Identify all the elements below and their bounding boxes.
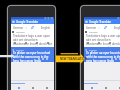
staticText: English <box>114 26 120 30</box>
button[interactable]: Listen <box>11 41 22 44</box>
other: Listen <box>85 49 87 51</box>
other: Swap languages <box>31 26 34 29</box>
button[interactable]: Listen <box>84 41 95 44</box>
staticText: Te plistar ua nyur ha untuel with the ca… <box>86 51 120 63</box>
button[interactable]: Fullscreen <box>44 41 54 44</box>
staticText: Google Translate <box>16 20 39 24</box>
button[interactable]: Home <box>84 86 99 89</box>
button[interactable]: Fullscreen <box>117 41 120 44</box>
staticText: NEW TRANSLATION <box>60 57 87 61</box>
button[interactable]: Saved <box>99 86 113 89</box>
staticText: Te plistar ua nyur ha untuel with the ca… <box>13 51 53 63</box>
button[interactable]: Open navigation menu <box>11 19 54 24</box>
button[interactable]: German <box>13 26 27 30</box>
button[interactable]: Share <box>33 41 44 44</box>
other: Listen <box>12 49 14 51</box>
button[interactable]: Copy <box>22 41 33 44</box>
button[interactable]: German <box>86 26 100 30</box>
staticText: Traduttore bajo a war upon ade ont descr… <box>86 34 120 50</box>
button[interactable]: Home <box>11 86 26 89</box>
other: Open navigation menu <box>12 20 15 23</box>
staticText: Google Translate <box>89 20 112 24</box>
button[interactable]: Settings <box>40 86 54 89</box>
staticText: English <box>89 49 97 52</box>
button[interactable]: Share <box>106 41 117 44</box>
other: Swap languages <box>104 26 107 29</box>
button[interactable]: Settings <box>113 86 120 89</box>
staticText: English <box>41 26 51 30</box>
button[interactable]: English <box>114 26 120 30</box>
staticText: German <box>86 26 97 30</box>
other: Open navigation menu <box>85 20 88 23</box>
staticText: English <box>16 49 24 52</box>
staticText: German <box>13 26 24 30</box>
button[interactable]: Saved <box>26 86 40 89</box>
staticText: German <box>89 31 98 34</box>
button[interactable]: Copy <box>95 41 106 44</box>
staticText: Traduttore bajo a war upon ade ont descr… <box>13 34 53 50</box>
staticText: German <box>16 31 25 34</box>
button[interactable]: Open navigation menu <box>84 19 120 24</box>
button[interactable]: English <box>41 26 51 30</box>
